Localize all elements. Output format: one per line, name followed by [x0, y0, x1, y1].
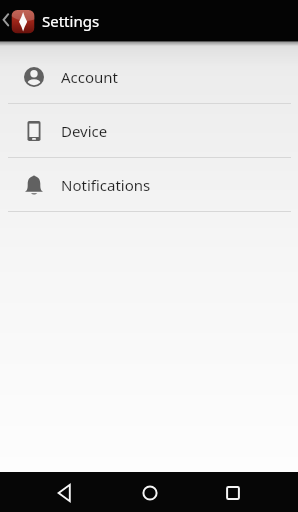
button[interactable]: Device	[0, 104, 298, 157]
button[interactable]: Notifications	[0, 158, 298, 211]
button[interactable]	[100, 472, 199, 512]
staticText: Account	[61, 67, 119, 87]
button[interactable]	[0, 0, 11, 41]
button[interactable]: Account	[0, 50, 298, 103]
staticText: Device	[61, 121, 108, 141]
button[interactable]	[0, 472, 100, 512]
staticText: Settings	[42, 11, 100, 31]
staticText: Notifications	[61, 175, 151, 195]
button[interactable]	[199, 472, 298, 512]
